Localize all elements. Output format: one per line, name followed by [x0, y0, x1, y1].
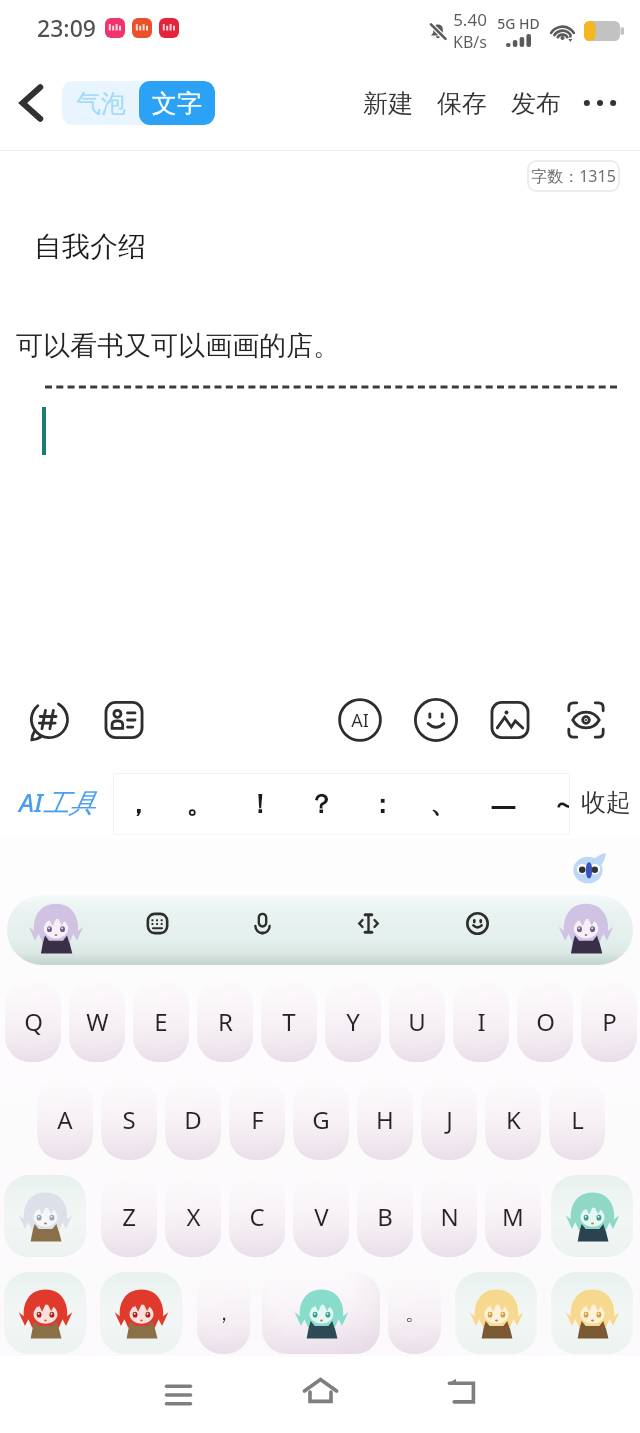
button[interactable]: E [133, 980, 189, 1062]
staticText: 保存 [437, 88, 487, 119]
button[interactable]: ， [197, 1272, 250, 1354]
button[interactable]: G [293, 1078, 349, 1160]
button[interactable]: ， [113, 773, 168, 835]
staticText: L [571, 1103, 584, 1136]
button[interactable] [455, 1272, 537, 1354]
button[interactable]: 发布 [499, 74, 573, 133]
staticText: D [184, 1103, 202, 1136]
button[interactable]: Contacts [96, 692, 152, 748]
button[interactable]: A [37, 1078, 93, 1160]
button[interactable] [551, 1175, 633, 1257]
button[interactable]: 字数：1315 [527, 160, 620, 192]
button[interactable] [4, 1272, 86, 1354]
staticText: 、 [430, 788, 456, 821]
staticText: H [376, 1103, 394, 1136]
button[interactable]: 文字 [139, 81, 215, 125]
staticText: B [377, 1200, 393, 1233]
staticText: J [446, 1103, 453, 1136]
staticText: 5.40 [453, 8, 487, 31]
staticText: 文字 [152, 88, 202, 119]
button[interactable]: N [421, 1175, 477, 1257]
staticText: AI [351, 708, 369, 733]
staticText: V [314, 1200, 329, 1233]
button[interactable]: 。 [168, 773, 229, 835]
button[interactable]: U [389, 980, 445, 1062]
staticText: 发布 [511, 88, 561, 119]
button[interactable]: AI assistant [332, 692, 388, 748]
button[interactable]: 。 [388, 1272, 441, 1354]
button[interactable]: Keyboard layout [135, 901, 179, 945]
staticText: 新建 [363, 88, 413, 119]
button[interactable]: 、 [412, 773, 473, 835]
button[interactable]: Image [482, 692, 538, 748]
button[interactable]: F [229, 1078, 285, 1160]
button[interactable]: Voice input [240, 901, 284, 945]
button[interactable]: V [293, 1175, 349, 1257]
staticText: ？ [308, 788, 334, 821]
staticText: F [251, 1103, 264, 1136]
button[interactable]: 新建 [351, 74, 425, 133]
button[interactable] [262, 1272, 380, 1354]
button[interactable]: I [453, 980, 509, 1062]
staticText: C [249, 1200, 265, 1233]
button[interactable]: C [229, 1175, 285, 1257]
button[interactable]: Back [3, 75, 59, 131]
staticText: R [218, 1005, 233, 1038]
staticText: — [490, 787, 517, 822]
button[interactable]: Move cursor [346, 901, 390, 945]
button[interactable]: Sticker [27, 899, 85, 957]
button[interactable]: More options [573, 76, 627, 130]
button[interactable]: 保存 [425, 74, 499, 133]
staticText: Q [24, 1005, 43, 1038]
button[interactable]: S [101, 1078, 157, 1160]
button[interactable]: ？ [290, 773, 351, 835]
button[interactable]: Back [438, 1367, 486, 1415]
button[interactable]: Recent apps [154, 1369, 202, 1417]
button[interactable]: ～ [534, 773, 570, 835]
button[interactable] [551, 1272, 633, 1354]
button[interactable]: ！ [229, 773, 290, 835]
button[interactable]: O [517, 980, 573, 1062]
staticText: AI工具 [19, 784, 95, 820]
button[interactable]: Emoji [455, 901, 499, 945]
staticText: ！ [247, 788, 273, 821]
staticText: 自我介绍 [34, 229, 146, 264]
staticText: I [477, 1005, 486, 1038]
button[interactable]: Preview [558, 692, 614, 748]
staticText: S [122, 1103, 136, 1136]
button[interactable]: M [485, 1175, 541, 1257]
button[interactable]: Home [296, 1367, 344, 1415]
button[interactable]: ： [351, 773, 412, 835]
staticText: M [502, 1200, 524, 1233]
button[interactable]: W [69, 980, 125, 1062]
button[interactable]: T [261, 980, 317, 1062]
button[interactable]: Topic [21, 692, 77, 748]
button[interactable]: AI工具 [4, 766, 110, 838]
button[interactable]: 收起 [572, 766, 640, 838]
button[interactable] [100, 1272, 182, 1354]
staticText: K [506, 1103, 521, 1136]
staticText: G [312, 1103, 330, 1136]
staticText: U [408, 1005, 426, 1038]
button[interactable]: Sticker [557, 899, 615, 957]
staticText: N [440, 1200, 459, 1233]
button[interactable]: Z [101, 1175, 157, 1257]
button[interactable]: B [357, 1175, 413, 1257]
button[interactable] [4, 1175, 86, 1257]
staticText: 5G HD [497, 14, 540, 33]
button[interactable]: — [473, 773, 534, 835]
button[interactable]: 气泡 [62, 81, 139, 125]
button[interactable]: L [549, 1078, 605, 1160]
button[interactable]: P [581, 980, 637, 1062]
button[interactable]: J [421, 1078, 477, 1160]
staticText: ， [214, 1301, 234, 1326]
button[interactable]: D [165, 1078, 221, 1160]
button[interactable]: Emoji [408, 692, 464, 748]
button[interactable]: Q [5, 980, 61, 1062]
button[interactable]: K [485, 1078, 541, 1160]
button[interactable]: X [165, 1175, 221, 1257]
button[interactable]: H [357, 1078, 413, 1160]
staticText: 可以看书又可以画画的店。 [16, 329, 340, 363]
button[interactable]: Y [325, 980, 381, 1062]
button[interactable]: R [197, 980, 253, 1062]
